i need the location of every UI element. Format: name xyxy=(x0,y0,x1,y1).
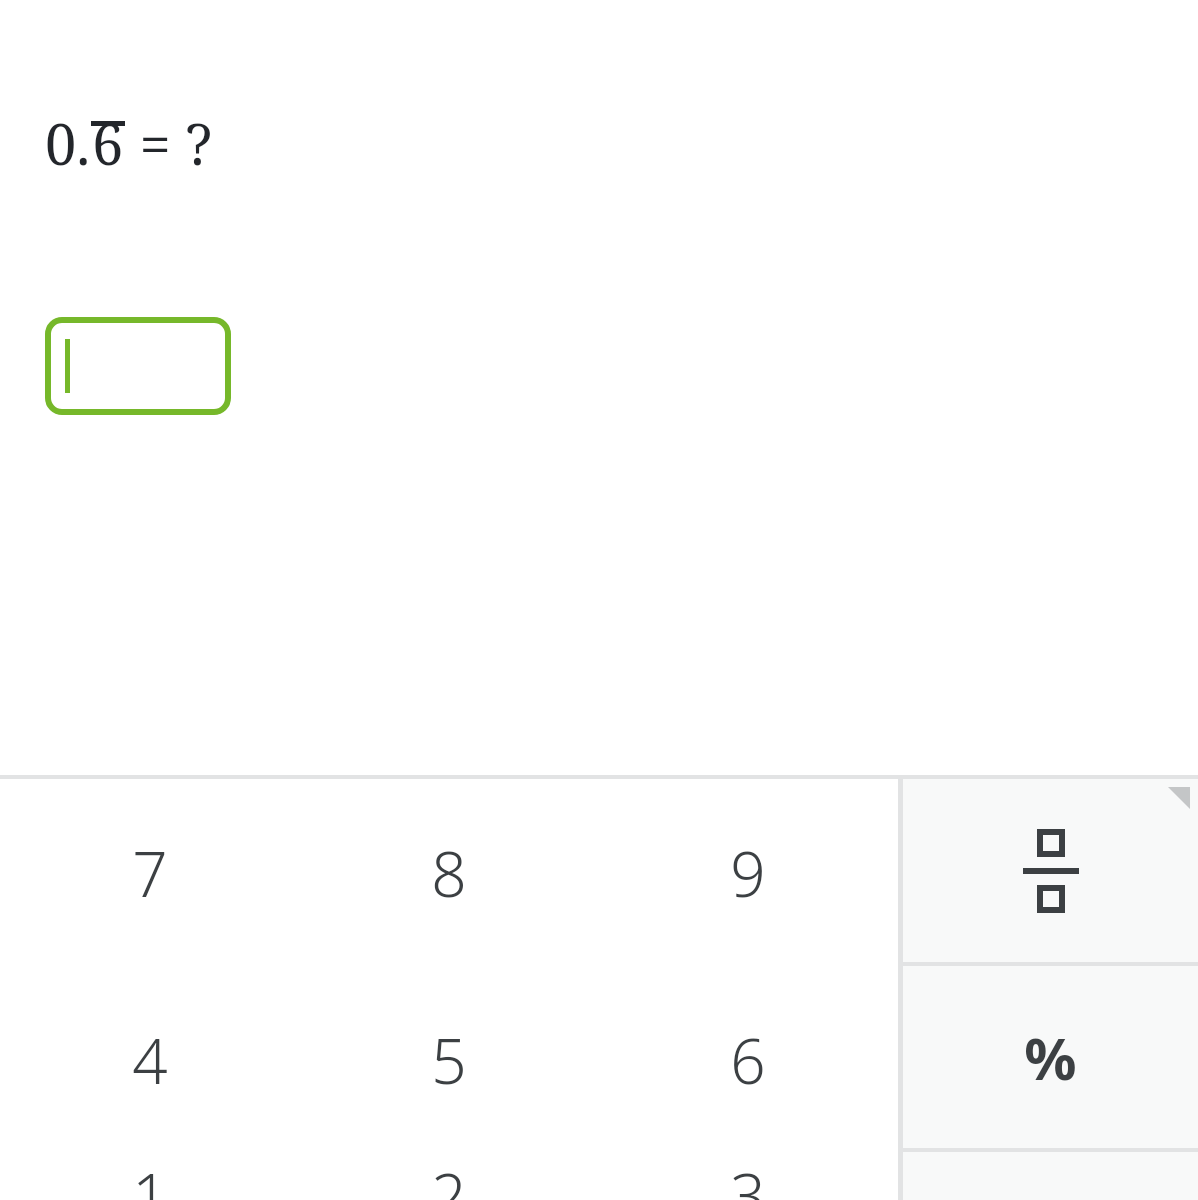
button[interactable] xyxy=(45,317,231,415)
staticText: 3 xyxy=(730,1153,766,1200)
staticText: = ? xyxy=(125,105,212,181)
button[interactable]: 3 xyxy=(598,1153,898,1200)
staticText: 1 xyxy=(132,1153,168,1200)
staticText: % xyxy=(1024,1018,1077,1097)
button[interactable]: 7 xyxy=(0,779,299,966)
button[interactable]: Fraction xyxy=(903,779,1198,962)
staticText: 2 xyxy=(431,1153,467,1200)
staticText: 4 xyxy=(132,1018,168,1102)
staticText: 9 xyxy=(730,831,766,915)
button[interactable]: 5 xyxy=(299,966,598,1153)
button[interactable]: % xyxy=(903,966,1198,1148)
button[interactable]: 2 xyxy=(299,1153,598,1200)
button[interactable]: 6 xyxy=(598,966,898,1153)
button[interactable]: 4 xyxy=(0,966,299,1153)
button[interactable]: 9 xyxy=(598,779,898,966)
staticText: 0. xyxy=(45,105,91,181)
staticText: 7 xyxy=(132,831,168,915)
staticText: 6 xyxy=(730,1018,766,1102)
staticText: 6 xyxy=(92,105,124,181)
staticText: 8 xyxy=(431,831,467,915)
button[interactable]: 1 xyxy=(0,1153,299,1200)
staticText: 5 xyxy=(431,1018,467,1102)
button[interactable]: 8 xyxy=(299,779,598,966)
